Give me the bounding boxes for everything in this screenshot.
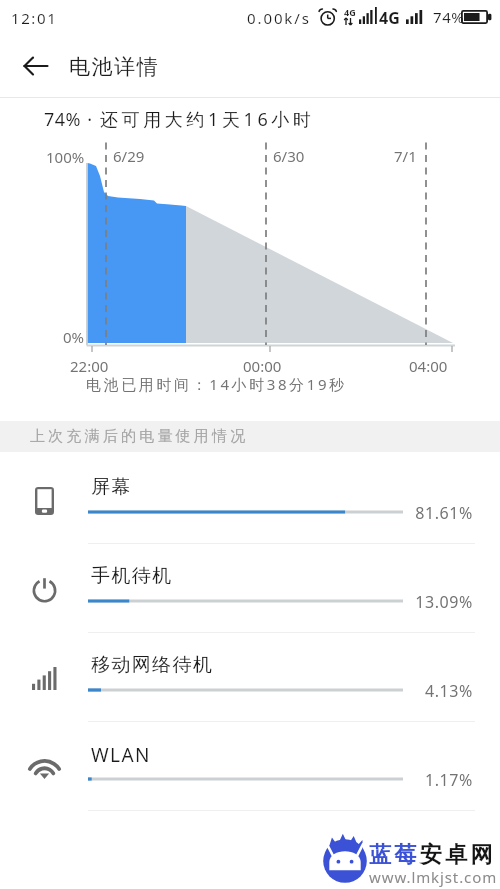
staticText: 74% <box>44 107 81 132</box>
staticText: 1.17% <box>393 769 473 791</box>
button[interactable]: Back <box>8 34 64 97</box>
staticText: 6/30 <box>273 146 305 166</box>
staticText: 移动网络待机 <box>91 653 214 677</box>
staticText: 上次充满后的电量使用情况 <box>30 427 249 446</box>
staticText: 蓝莓 <box>369 841 420 869</box>
staticText: 4G <box>344 6 356 18</box>
staticText: 还可用大约1天16小时 <box>100 107 315 132</box>
staticText: · <box>81 107 100 132</box>
staticText: 6/29 <box>113 146 145 166</box>
staticText: 00:00 <box>243 356 282 376</box>
staticText: 74% <box>433 7 465 27</box>
staticText: 手机待机 <box>91 564 173 588</box>
staticText: 电池详情 <box>69 54 160 80</box>
staticText: 22:00 <box>70 356 109 376</box>
staticText: 屏幕 <box>91 475 132 499</box>
button[interactable]: 屏幕 <box>0 455 500 544</box>
staticText: 81.61% <box>393 502 473 524</box>
staticText: 100% <box>46 147 85 167</box>
staticText: 4G <box>379 7 400 29</box>
staticText: WLAN <box>91 742 151 768</box>
button[interactable]: WLAN <box>0 722 500 811</box>
staticText: 12:01 <box>11 8 58 28</box>
staticText: 电池已用时间：14小时38分19秒 <box>86 374 347 394</box>
staticText: 04:00 <box>409 356 448 376</box>
staticText: 7/1 <box>394 146 417 166</box>
staticText: 13.09% <box>393 591 473 613</box>
staticText: 0% <box>63 327 85 347</box>
staticText: 安卓网 <box>420 841 496 869</box>
button[interactable]: 手机待机 <box>0 544 500 633</box>
staticText: 0.00k/s <box>247 8 311 28</box>
button[interactable]: 移动网络待机 <box>0 633 500 722</box>
staticText: www.lmkjst.com <box>369 867 498 887</box>
staticText: 4.13% <box>393 680 473 702</box>
